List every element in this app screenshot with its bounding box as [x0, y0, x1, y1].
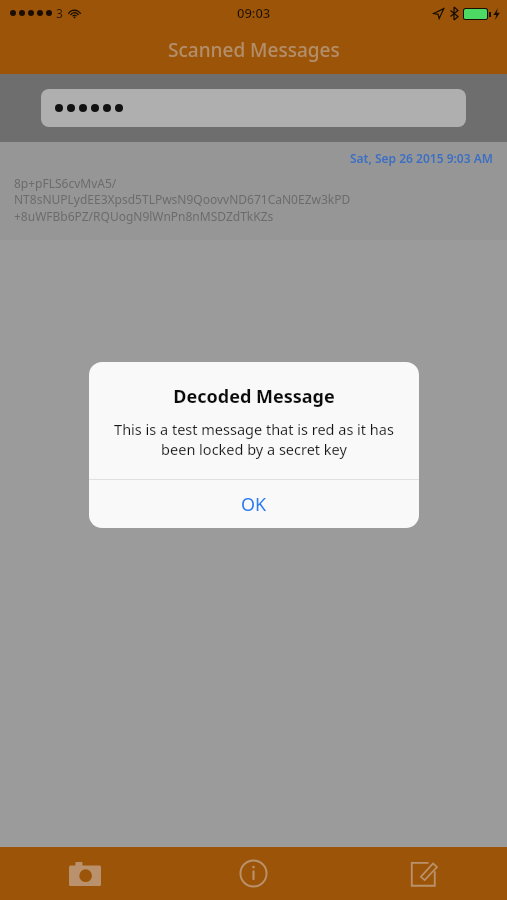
- button[interactable]: [41, 89, 466, 127]
- staticText: OK: [241, 492, 267, 517]
- button[interactable]: Scan with camera: [0, 847, 169, 900]
- staticText: 09:03: [237, 4, 271, 22]
- button[interactable]: Sat, Sep 26 2015 9:03 AM: [0, 142, 507, 240]
- button[interactable]: Compose message: [338, 847, 507, 900]
- staticText: 8p+pFLS6cvMvA5/ NT8sNUPLydEE3Xpsd5TLPwsN…: [14, 175, 351, 225]
- staticText: This is a test message that is red as it…: [107, 419, 401, 459]
- staticText: Decoded Message: [89, 384, 419, 409]
- button[interactable]: Info: [169, 847, 338, 900]
- staticText: Scanned Messages: [168, 37, 340, 63]
- staticText: 3: [56, 5, 63, 21]
- staticText: Sat, Sep 26 2015 9:03 AM: [350, 150, 493, 166]
- button[interactable]: OK: [89, 480, 419, 528]
